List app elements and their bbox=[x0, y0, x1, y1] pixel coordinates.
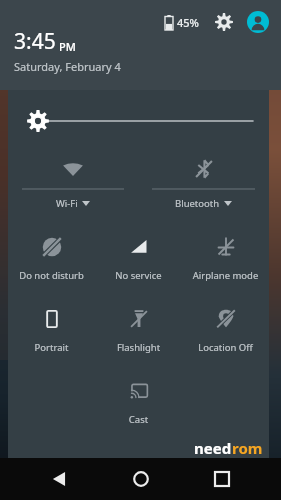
staticText: Flashlight bbox=[95, 341, 182, 354]
button[interactable]: Recents bbox=[199, 458, 245, 500]
staticText: 45% bbox=[177, 15, 199, 30]
button[interactable]: Home bbox=[118, 458, 164, 500]
staticText: Wi-Fi bbox=[56, 197, 78, 210]
staticText: 3:45 bbox=[14, 27, 56, 56]
button[interactable]: 3:45 bbox=[14, 27, 121, 74]
button[interactable]: Wi-Fi bbox=[8, 148, 138, 216]
staticText: rom bbox=[232, 438, 263, 454]
button[interactable]: Cast bbox=[95, 366, 182, 438]
staticText: Saturday, February 4 bbox=[14, 59, 121, 74]
staticText: No service bbox=[95, 269, 182, 282]
button[interactable]: User account bbox=[245, 9, 271, 35]
button[interactable]: Airplane mode bbox=[182, 222, 269, 294]
staticText: Cast bbox=[95, 413, 182, 426]
staticText: Bluetooth bbox=[175, 197, 220, 210]
staticText: Do not disturb bbox=[8, 269, 95, 282]
button[interactable]: Bluetooth bbox=[138, 148, 269, 216]
button[interactable]: Location Off bbox=[182, 294, 269, 366]
button[interactable]: Back bbox=[36, 458, 82, 500]
staticText: Location Off bbox=[182, 341, 269, 354]
staticText: Portrait bbox=[8, 341, 95, 354]
button[interactable]: No service bbox=[95, 222, 182, 294]
staticText: Airplane mode bbox=[182, 269, 269, 282]
button[interactable]: Flashlight bbox=[95, 294, 182, 366]
button[interactable]: Settings bbox=[211, 9, 237, 35]
button[interactable]: Portrait bbox=[8, 294, 95, 366]
staticText: PM bbox=[59, 39, 76, 54]
staticText: need bbox=[194, 438, 232, 454]
button[interactable]: Brightness bbox=[8, 104, 269, 138]
button[interactable]: Do not disturb bbox=[8, 222, 95, 294]
